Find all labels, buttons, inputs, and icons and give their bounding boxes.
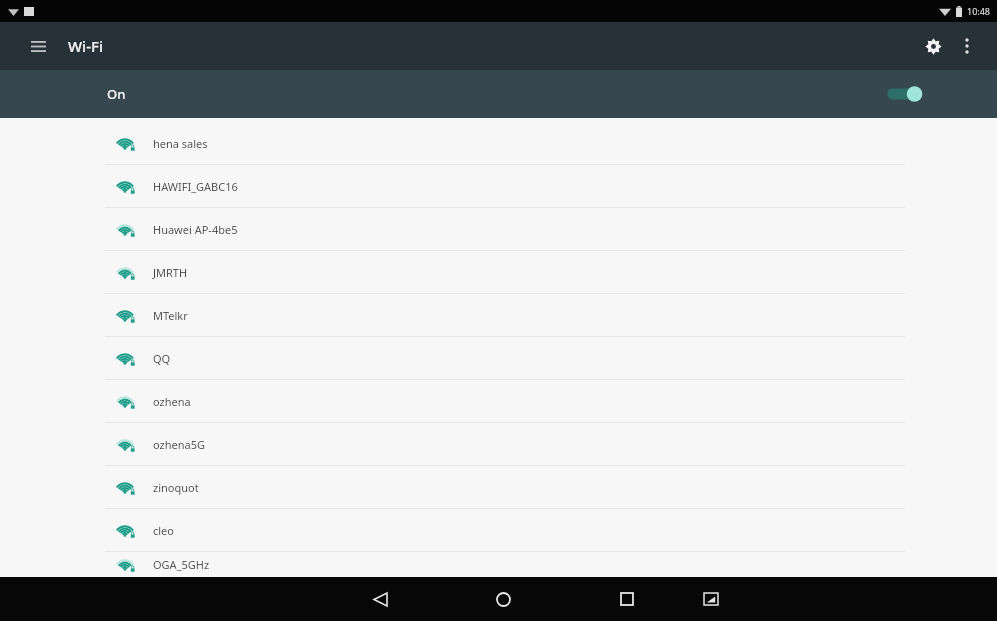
button[interactable]: Back xyxy=(358,577,402,621)
button[interactable]: On xyxy=(0,70,997,118)
staticText: QQ xyxy=(153,351,171,366)
staticText: HAWIFI_GABC16 xyxy=(153,179,238,194)
staticText: MTelkr xyxy=(153,308,188,323)
staticText: cleo xyxy=(153,523,174,538)
staticText: JMRTH xyxy=(153,265,188,280)
button[interactable]: ozhena xyxy=(0,380,997,422)
button[interactable]: Home xyxy=(481,577,525,621)
staticText: hena sales xyxy=(153,136,208,151)
button[interactable]: Wi-Fi toggle, on xyxy=(881,81,925,107)
button[interactable]: MTelkr xyxy=(0,294,997,336)
staticText: 10:48 xyxy=(967,5,991,17)
button[interactable]: HAWIFI_GABC16 xyxy=(0,165,997,207)
staticText: OGA_5GHz xyxy=(153,557,210,572)
button[interactable]: Screenshot xyxy=(689,577,733,621)
staticText: ozhena5G xyxy=(153,437,205,452)
button[interactable]: Navigation menu xyxy=(22,30,54,62)
button[interactable]: OGA_5GHz xyxy=(0,552,997,577)
button[interactable]: cleo xyxy=(0,509,997,551)
staticText: Huawei AP-4be5 xyxy=(153,222,238,237)
staticText: On xyxy=(107,85,126,103)
staticText: ozhena xyxy=(153,394,191,409)
button[interactable]: More options xyxy=(949,28,985,64)
button[interactable]: JMRTH xyxy=(0,251,997,293)
button[interactable]: Huawei AP-4be5 xyxy=(0,208,997,250)
button[interactable]: zinoquot xyxy=(0,466,997,508)
staticText: zinoquot xyxy=(153,480,199,495)
button[interactable]: Advanced Wi-Fi settings xyxy=(913,26,953,66)
button[interactable]: ozhena5G xyxy=(0,423,997,465)
button[interactable]: Recent apps xyxy=(605,577,649,621)
button[interactable]: QQ xyxy=(0,337,997,379)
button[interactable]: hena sales xyxy=(0,122,997,164)
staticText: Wi-Fi xyxy=(68,36,103,56)
